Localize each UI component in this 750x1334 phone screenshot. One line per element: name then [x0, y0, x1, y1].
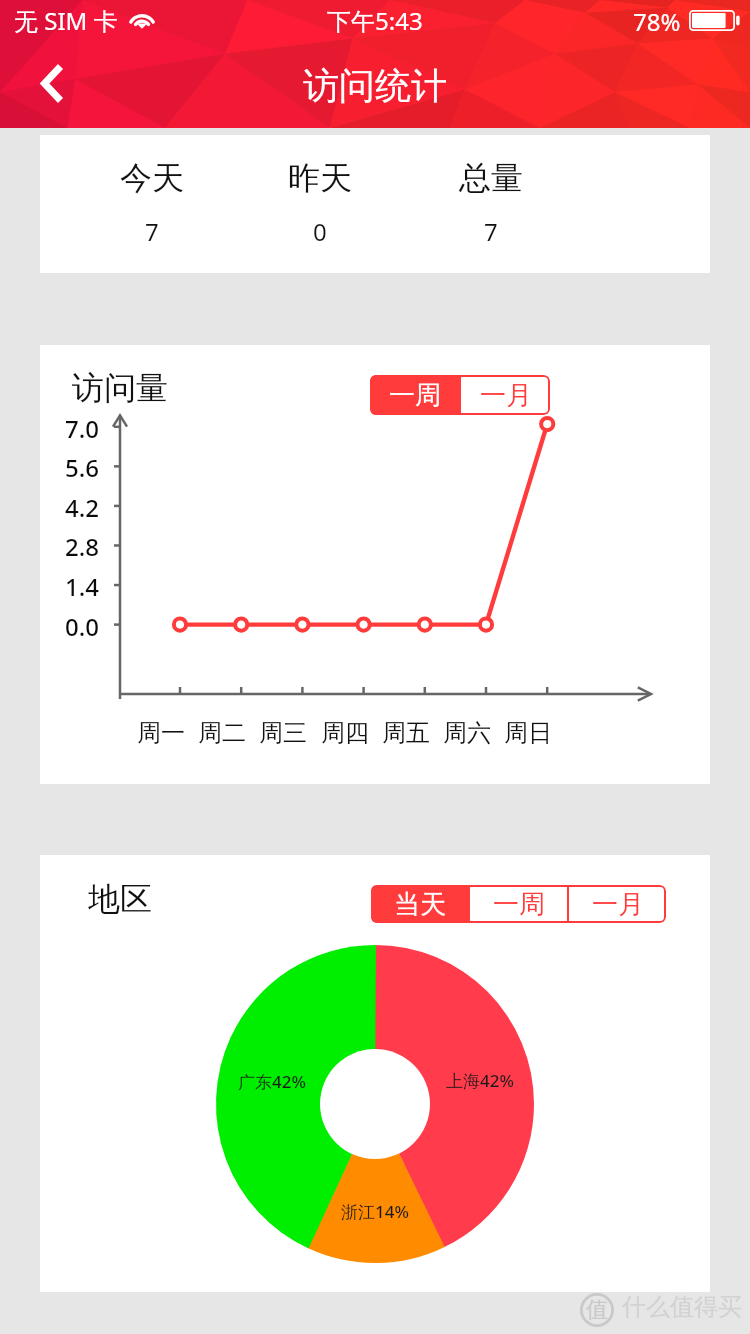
button[interactable]: 总量: [411, 135, 571, 273]
staticText: 0: [313, 215, 327, 248]
staticText: 地区: [88, 879, 152, 919]
staticText: 5.6: [65, 451, 99, 484]
staticText: 周日: [504, 718, 552, 748]
button[interactable]: Back: [26, 57, 78, 109]
staticText: 下午5:43: [327, 4, 423, 37]
staticText: 周五: [382, 718, 430, 748]
staticText: 什么值得买: [622, 1292, 742, 1322]
button[interactable]: 一周: [470, 885, 567, 923]
staticText: 一周: [389, 379, 441, 412]
staticText: 周三: [259, 718, 307, 748]
staticText: 7: [484, 215, 498, 248]
staticText: 周一: [137, 718, 185, 748]
staticText: 一周: [493, 888, 545, 921]
staticText: 2.8: [65, 530, 99, 563]
staticText: 今天: [120, 158, 184, 198]
staticText: 0.0: [65, 610, 99, 643]
staticText: 7: [145, 215, 159, 248]
staticText: 无 SIM 卡: [14, 4, 118, 37]
staticText: 昨天: [288, 158, 352, 198]
staticText: 广东42%: [238, 1070, 306, 1093]
staticText: 78%: [633, 5, 681, 38]
button[interactable]: 昨天: [240, 135, 400, 273]
staticText: 7.0: [65, 412, 99, 445]
staticText: 一月: [480, 379, 532, 412]
staticText: 一月: [592, 888, 644, 921]
button[interactable]: 当天: [371, 885, 468, 923]
staticText: 上海42%: [446, 1069, 514, 1092]
button[interactable]: 一月: [569, 885, 666, 923]
staticText: 总量: [459, 158, 523, 198]
staticText: 访问量: [72, 368, 168, 408]
staticText: 周六: [443, 718, 491, 748]
staticText: 浙江14%: [341, 1200, 409, 1223]
staticText: 1.4: [65, 570, 99, 603]
staticText: 周二: [198, 718, 246, 748]
button[interactable]: 一月: [461, 375, 550, 415]
staticText: 4.2: [65, 491, 99, 524]
button[interactable]: 一周: [370, 375, 459, 415]
staticText: 当天: [394, 888, 446, 921]
button[interactable]: 今天: [72, 135, 232, 273]
staticText: 访问统计: [303, 63, 447, 108]
staticText: 值: [586, 1296, 608, 1324]
staticText: 周四: [321, 718, 369, 748]
